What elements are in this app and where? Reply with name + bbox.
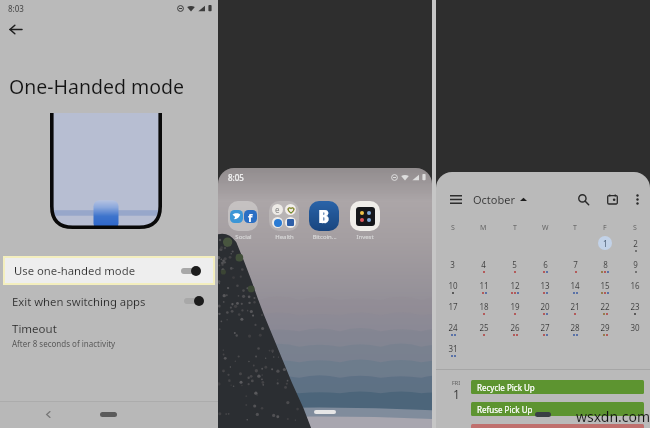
staticText: 29 <box>600 322 610 333</box>
button[interactable]: 6 <box>530 257 560 278</box>
staticText: Exit when switching apps <box>12 294 146 309</box>
button[interactable]: 10 <box>437 278 468 299</box>
button[interactable]: 17 <box>437 299 468 320</box>
staticText: 8:03 <box>8 3 24 14</box>
staticText: 7 <box>573 259 578 270</box>
staticText: e <box>275 204 280 215</box>
staticText: f <box>248 210 253 223</box>
staticText: 1 <box>603 238 608 249</box>
button[interactable]: Recycle Pick Up <box>471 380 644 394</box>
button[interactable]: 20 <box>530 299 560 320</box>
button[interactable]: More options <box>628 190 646 208</box>
button[interactable]: 28 <box>560 320 590 341</box>
staticText: T <box>573 223 577 233</box>
button[interactable]: Use one-handed mode <box>5 258 213 283</box>
staticText: 16 <box>630 280 640 291</box>
staticText: Bitcoin... <box>312 233 337 241</box>
button[interactable]: 25 <box>468 320 499 341</box>
staticText: Recycle Pick Up <box>477 382 535 393</box>
button[interactable]: 13 <box>530 278 560 299</box>
button[interactable]: Search <box>573 189 593 209</box>
staticText: Invest <box>356 233 374 241</box>
staticText: 3 <box>450 259 455 270</box>
button[interactable]: 22 <box>590 299 620 320</box>
button[interactable]: e <box>267 201 301 241</box>
button[interactable]: 1 <box>590 236 620 257</box>
button[interactable]: 27 <box>530 320 560 341</box>
staticText: Refuse Pick Up <box>477 404 533 415</box>
button[interactable]: B <box>307 201 341 241</box>
staticText: T <box>513 223 517 233</box>
staticText: October <box>473 192 516 207</box>
staticText: 14 <box>570 280 580 291</box>
button[interactable]: Home <box>314 410 336 414</box>
button[interactable]: 11 <box>468 278 499 299</box>
button[interactable]: 23 <box>620 299 650 320</box>
staticText: M <box>480 223 487 233</box>
button[interactable]: Toggle <box>184 295 204 307</box>
button[interactable]: 18 <box>468 299 499 320</box>
staticText: 28 <box>570 322 580 333</box>
button[interactable]: 3 <box>437 257 468 278</box>
button[interactable]: 16 <box>620 278 650 299</box>
button[interactable]: 26 <box>499 320 530 341</box>
button[interactable]: 21 <box>560 299 590 320</box>
button[interactable]: Refuse Pick Up <box>471 402 644 416</box>
button[interactable]: 15 <box>590 278 620 299</box>
button[interactable]: Invest <box>348 201 382 241</box>
button[interactable]: 31 <box>437 341 468 362</box>
staticText: Use one-handed mode <box>14 263 136 278</box>
button[interactable]: 29 <box>590 320 620 341</box>
button[interactable]: Back <box>3 17 27 41</box>
button[interactable]: Menu <box>446 189 466 209</box>
staticText: 6 <box>543 259 548 270</box>
button[interactable]: f <box>226 201 260 241</box>
staticText: 30 <box>630 322 640 333</box>
staticText: S <box>451 223 455 233</box>
button[interactable]: 14 <box>560 278 590 299</box>
button[interactable]: Timeout <box>0 321 218 349</box>
button[interactable]: 19 <box>499 299 530 320</box>
button[interactable]: Home <box>96 401 120 428</box>
button[interactable]: Today <box>602 189 622 209</box>
staticText: 22 <box>600 301 610 312</box>
staticText: 27 <box>540 322 550 333</box>
staticText: 20 <box>540 301 550 312</box>
button[interactable]: 9 <box>620 257 650 278</box>
button[interactable]: Home <box>535 412 551 417</box>
button[interactable]: 12 <box>499 278 530 299</box>
staticText: 23 <box>630 301 640 312</box>
button[interactable]: Exit when switching apps <box>0 288 218 314</box>
button[interactable]: 30 <box>620 320 650 341</box>
staticText: 26 <box>510 322 520 333</box>
staticText: 24 <box>448 322 458 333</box>
staticText: 12 <box>510 280 520 291</box>
staticText: B <box>318 205 330 228</box>
staticText: 13 <box>540 280 550 291</box>
staticText: 31 <box>448 343 458 354</box>
staticText: 4 <box>481 259 486 270</box>
staticText: FRI <box>452 379 461 386</box>
button[interactable]: 24 <box>437 320 468 341</box>
staticText: S <box>633 223 637 233</box>
button[interactable]: Toggle <box>181 265 201 277</box>
staticText: F <box>603 223 607 233</box>
staticText: 18 <box>479 301 489 312</box>
button[interactable]: Back <box>36 401 60 428</box>
button[interactable]: 7 <box>560 257 590 278</box>
button[interactable]: 2 <box>620 236 650 257</box>
button[interactable]: 5 <box>499 257 530 278</box>
staticText: 2 <box>633 238 638 249</box>
button[interactable]: 8 <box>590 257 620 278</box>
button[interactable]: 4 <box>468 257 499 278</box>
staticText: 1 <box>453 386 460 402</box>
